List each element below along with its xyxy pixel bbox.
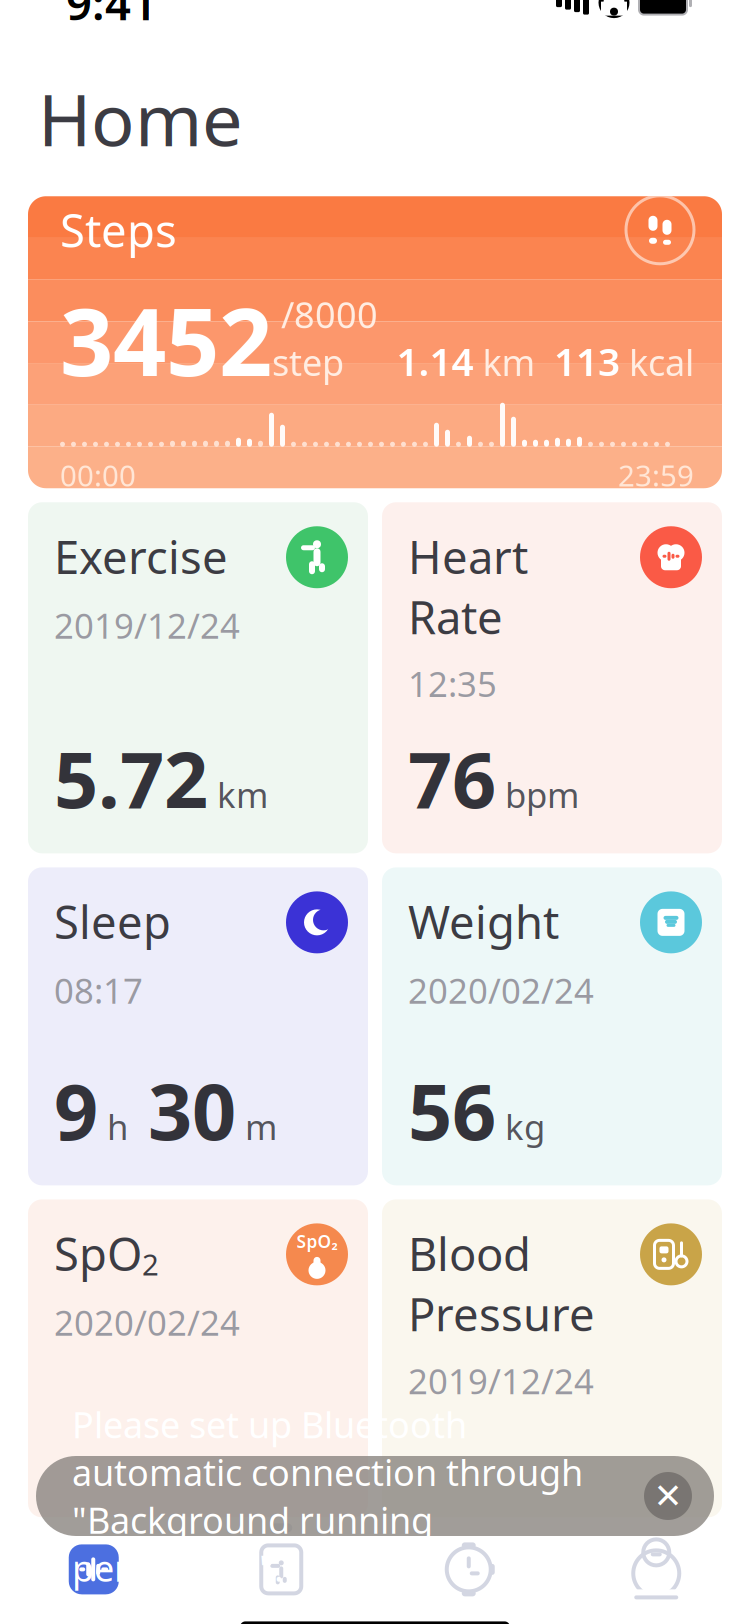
staticText: 00:00 (60, 456, 136, 495)
staticText: kg (496, 1104, 545, 1150)
staticText: Blood Pressure (408, 1223, 595, 1344)
button[interactable]: Exercise (28, 502, 368, 853)
staticText: 12:35 (408, 661, 497, 707)
button[interactable]: Blood Pressure (382, 1199, 722, 1517)
staticText: bpm (496, 772, 579, 818)
button[interactable]: Device (375, 1517, 562, 1621)
staticText: h (98, 1104, 128, 1150)
staticText: 9 (54, 1059, 98, 1161)
staticText: 2019/12/24 (408, 1358, 594, 1404)
staticText: 08:17 (54, 967, 143, 1013)
staticText: km (473, 338, 535, 386)
staticText: m (236, 1104, 277, 1150)
button[interactable]: Workout (187, 1517, 375, 1621)
button[interactable]: Dismiss message (644, 1472, 692, 1520)
staticText: 5.72 (54, 727, 208, 829)
button[interactable]: Weight (382, 867, 722, 1185)
staticText: km (208, 772, 268, 818)
staticText: Heart Rate (408, 526, 528, 647)
staticText: 9:41 (66, 0, 157, 33)
staticText: Weight (408, 891, 559, 952)
staticText: SpO (54, 1223, 142, 1284)
button[interactable]: Heart Rate (382, 502, 722, 853)
staticText: 30 (128, 1059, 236, 1161)
staticText: SpO₂ (296, 1230, 337, 1253)
button[interactable]: Profile (562, 1517, 750, 1621)
staticText: 76 (408, 727, 496, 829)
staticText: 23:59 (618, 456, 694, 495)
staticText: 2 (142, 1245, 159, 1284)
button[interactable]: SpO (28, 1199, 368, 1517)
staticText: 56 (408, 1059, 496, 1161)
staticText: Sleep (54, 891, 171, 952)
button[interactable]: Steps (28, 196, 722, 488)
staticText: Home (38, 71, 243, 166)
staticText: 113 (554, 335, 620, 387)
staticText: Steps (60, 200, 177, 260)
button[interactable]: Sleep (28, 867, 368, 1185)
staticText: 1.14 (396, 335, 473, 387)
staticText: Exercise (54, 526, 228, 586)
staticText: 2020/02/24 (54, 1299, 240, 1345)
staticText: ✕ (653, 1476, 682, 1516)
button[interactable]: Health (0, 1517, 187, 1621)
staticText: kcal (620, 338, 694, 386)
staticText: 2020/02/24 (408, 967, 594, 1013)
staticText: 2019/12/24 (54, 602, 240, 648)
staticText: Please set up Bluetooth automatic connec… (72, 1400, 583, 1592)
staticText: /8000 step (272, 290, 378, 386)
staticText: 3452 (60, 278, 272, 402)
